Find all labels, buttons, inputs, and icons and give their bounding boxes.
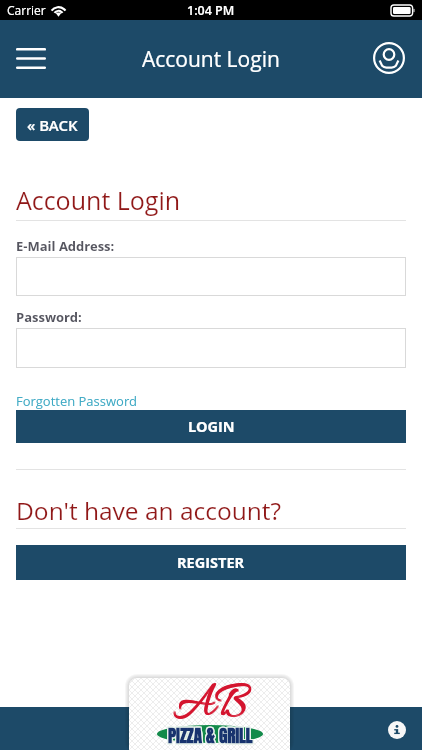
staticText: Account Login — [142, 45, 280, 74]
staticText: « BACK — [27, 115, 78, 135]
staticText: PIZZA & GRILL — [169, 722, 254, 748]
staticText: PIZZA & GRILL — [167, 723, 252, 749]
staticText: 1:04 PM — [187, 2, 235, 19]
button[interactable] — [16, 328, 406, 368]
staticText: AB — [173, 678, 247, 735]
staticText: AB — [174, 678, 248, 735]
button[interactable]: Forgotten Password — [16, 391, 137, 411]
staticText: E-Mail Address: — [16, 237, 115, 255]
staticText: REGISTER — [177, 553, 245, 573]
staticText: Account Login — [16, 183, 181, 217]
button[interactable]: Information — [388, 721, 406, 739]
button[interactable]: Menu — [16, 48, 46, 69]
staticText: AB — [174, 678, 248, 736]
button[interactable] — [16, 257, 406, 296]
staticText: Password: — [16, 308, 82, 326]
button[interactable]: Account — [373, 42, 405, 74]
staticText: PIZZA & GRILL — [168, 723, 253, 749]
staticText: PIZZA & GRILL — [167, 722, 252, 748]
staticText: Carrier — [7, 2, 46, 18]
button[interactable]: AB — [129, 678, 290, 750]
staticText: PIZZA & GRILL — [168, 724, 253, 750]
staticText: AB — [173, 678, 247, 736]
button[interactable]: « BACK — [16, 108, 89, 141]
staticText: PIZZA & GRILL — [169, 723, 254, 749]
button[interactable]: REGISTER — [16, 545, 406, 580]
staticText: PIZZA & GRILL — [167, 724, 252, 750]
button[interactable]: LOGIN — [16, 410, 406, 443]
staticText: PIZZA & GRILL — [168, 722, 253, 748]
staticText: Don't have an account? — [16, 494, 281, 527]
staticText: PIZZA & GRILL — [169, 724, 254, 750]
staticText: LOGIN — [188, 417, 235, 437]
